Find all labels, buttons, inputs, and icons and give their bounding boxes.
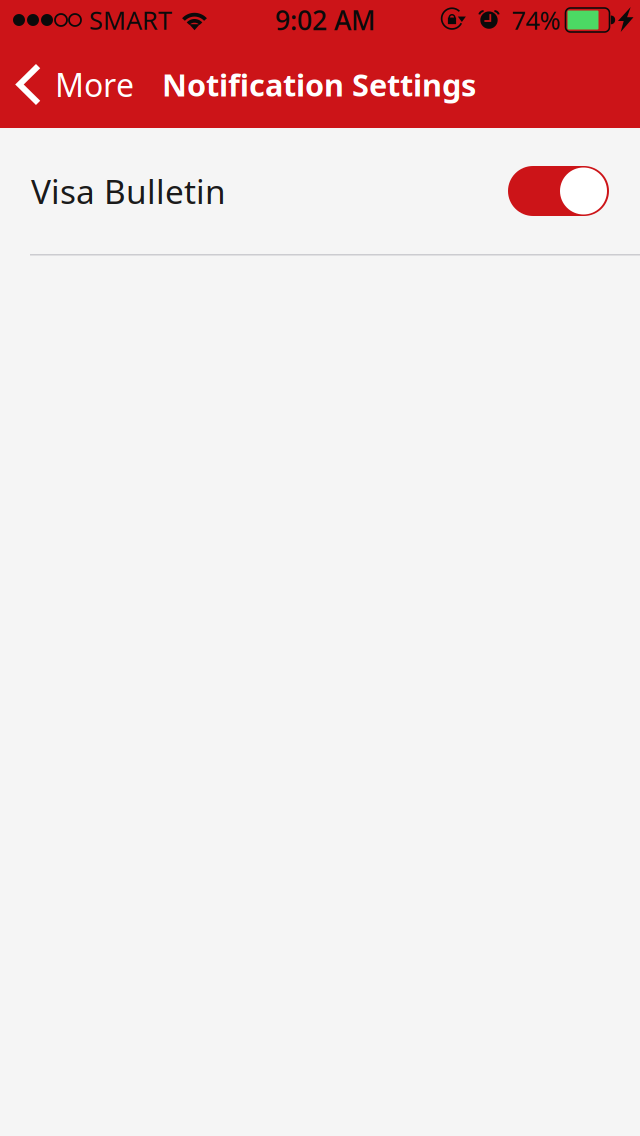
button[interactable]: Visa Bulletin <box>0 128 640 255</box>
staticText: Notification Settings <box>162 64 476 105</box>
staticText: More <box>55 63 134 106</box>
staticText: 9:02 AM <box>275 2 375 38</box>
staticText: Visa Bulletin <box>31 169 226 213</box>
button[interactable]: More <box>0 48 148 120</box>
staticText: 74% <box>511 3 560 37</box>
staticText: SMART <box>89 3 172 37</box>
